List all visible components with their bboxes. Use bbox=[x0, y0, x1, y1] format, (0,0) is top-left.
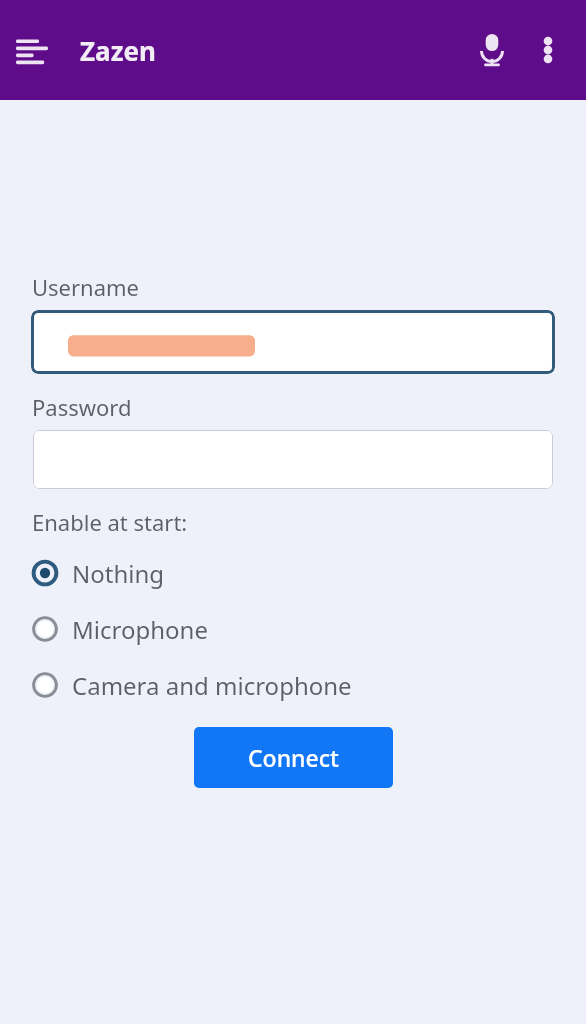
button[interactable]: Voice input bbox=[466, 24, 518, 76]
staticText: Password bbox=[32, 392, 132, 422]
button[interactable]: Nothing bbox=[30, 553, 586, 593]
staticText: Nothing bbox=[72, 557, 165, 590]
staticText: Zazen bbox=[80, 33, 156, 68]
button[interactable]: More options bbox=[524, 26, 572, 74]
button[interactable]: Camera and microphone bbox=[30, 665, 586, 705]
staticText: Camera and microphone bbox=[72, 669, 352, 702]
button[interactable] bbox=[31, 310, 555, 374]
staticText: Microphone bbox=[72, 613, 208, 646]
button[interactable]: Microphone bbox=[30, 609, 586, 649]
staticText: Connect bbox=[248, 742, 339, 773]
staticText: Username bbox=[32, 272, 140, 302]
button[interactable]: Open navigation menu bbox=[8, 26, 56, 74]
staticText: Enable at start: bbox=[32, 507, 188, 537]
button[interactable] bbox=[33, 430, 553, 489]
button[interactable]: Connect bbox=[194, 727, 393, 788]
